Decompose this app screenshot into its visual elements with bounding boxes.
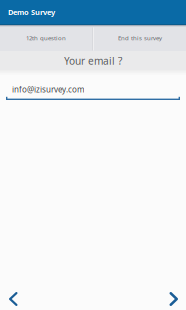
staticText: Your email ? (64, 54, 122, 68)
staticText: End this survey (118, 34, 162, 42)
button[interactable]: Previous question (0, 286, 29, 310)
staticText: info@izisurvey.com (12, 84, 84, 95)
button[interactable]: Next question (157, 286, 186, 310)
button[interactable]: 12th question (0, 27, 92, 51)
staticText: Demo Survey (8, 7, 55, 17)
button[interactable]: End this survey (94, 27, 186, 51)
staticText: 12th question (26, 34, 66, 42)
